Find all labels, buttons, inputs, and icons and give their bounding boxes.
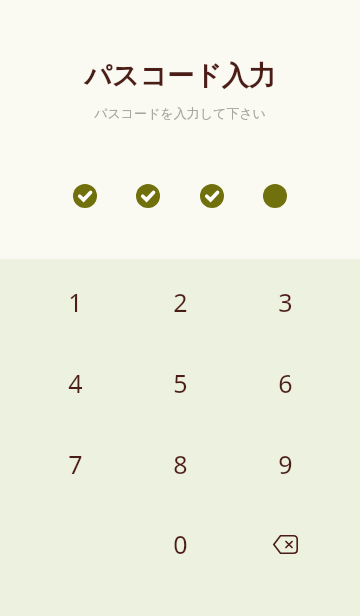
- button[interactable]: 0: [128, 506, 232, 582]
- button[interactable]: 3: [233, 264, 337, 340]
- button[interactable]: 8: [128, 426, 232, 502]
- button[interactable]: 6: [233, 345, 337, 421]
- button[interactable]: 2: [128, 264, 232, 340]
- staticText: 0: [173, 527, 188, 561]
- staticText: 7: [68, 447, 83, 481]
- staticText: 3: [278, 285, 293, 319]
- button[interactable]: 7: [23, 426, 127, 502]
- staticText: パスコード入力: [0, 59, 360, 93]
- button[interactable]: 4: [23, 345, 127, 421]
- button[interactable]: Backspace: [233, 506, 337, 582]
- staticText: 5: [173, 366, 188, 400]
- staticText: パスコードを入力して下さい: [0, 105, 360, 121]
- staticText: 6: [278, 366, 293, 400]
- staticText: 4: [68, 366, 83, 400]
- staticText: 9: [278, 447, 293, 481]
- button[interactable]: 9: [233, 426, 337, 502]
- button[interactable]: 5: [128, 345, 232, 421]
- staticText: 8: [173, 447, 188, 481]
- staticText: 2: [173, 285, 188, 319]
- button[interactable]: 1: [23, 264, 127, 340]
- staticText: 1: [68, 285, 83, 319]
